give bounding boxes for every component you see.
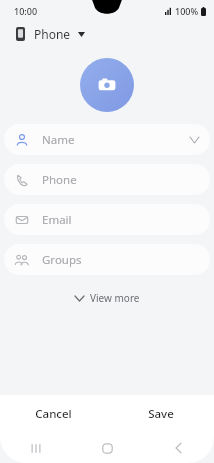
button[interactable]: Groups xyxy=(4,244,210,275)
staticText: Phone xyxy=(34,26,71,42)
staticText: Name xyxy=(42,132,75,148)
staticText: Email xyxy=(42,212,72,228)
button[interactable]: Add contact photo xyxy=(80,58,134,112)
button[interactable]: Home xyxy=(72,433,143,463)
staticText: View more xyxy=(90,291,140,305)
staticText: Groups xyxy=(42,252,82,268)
button[interactable]: View more xyxy=(67,287,148,309)
staticText: Save xyxy=(148,406,174,422)
button[interactable]: Phone xyxy=(14,22,87,46)
staticText: Phone xyxy=(42,172,77,188)
staticText: Cancel xyxy=(35,406,72,422)
button[interactable]: Email xyxy=(4,204,210,235)
button[interactable]: Save xyxy=(107,395,214,433)
button[interactable]: Name xyxy=(4,124,210,155)
staticText: 10:00 xyxy=(14,5,38,17)
button[interactable]: Cancel xyxy=(0,395,107,433)
button[interactable]: Recent apps xyxy=(0,433,72,463)
button[interactable]: Back xyxy=(143,433,214,463)
button[interactable]: Phone xyxy=(4,164,210,195)
staticText: 100% xyxy=(175,5,199,17)
